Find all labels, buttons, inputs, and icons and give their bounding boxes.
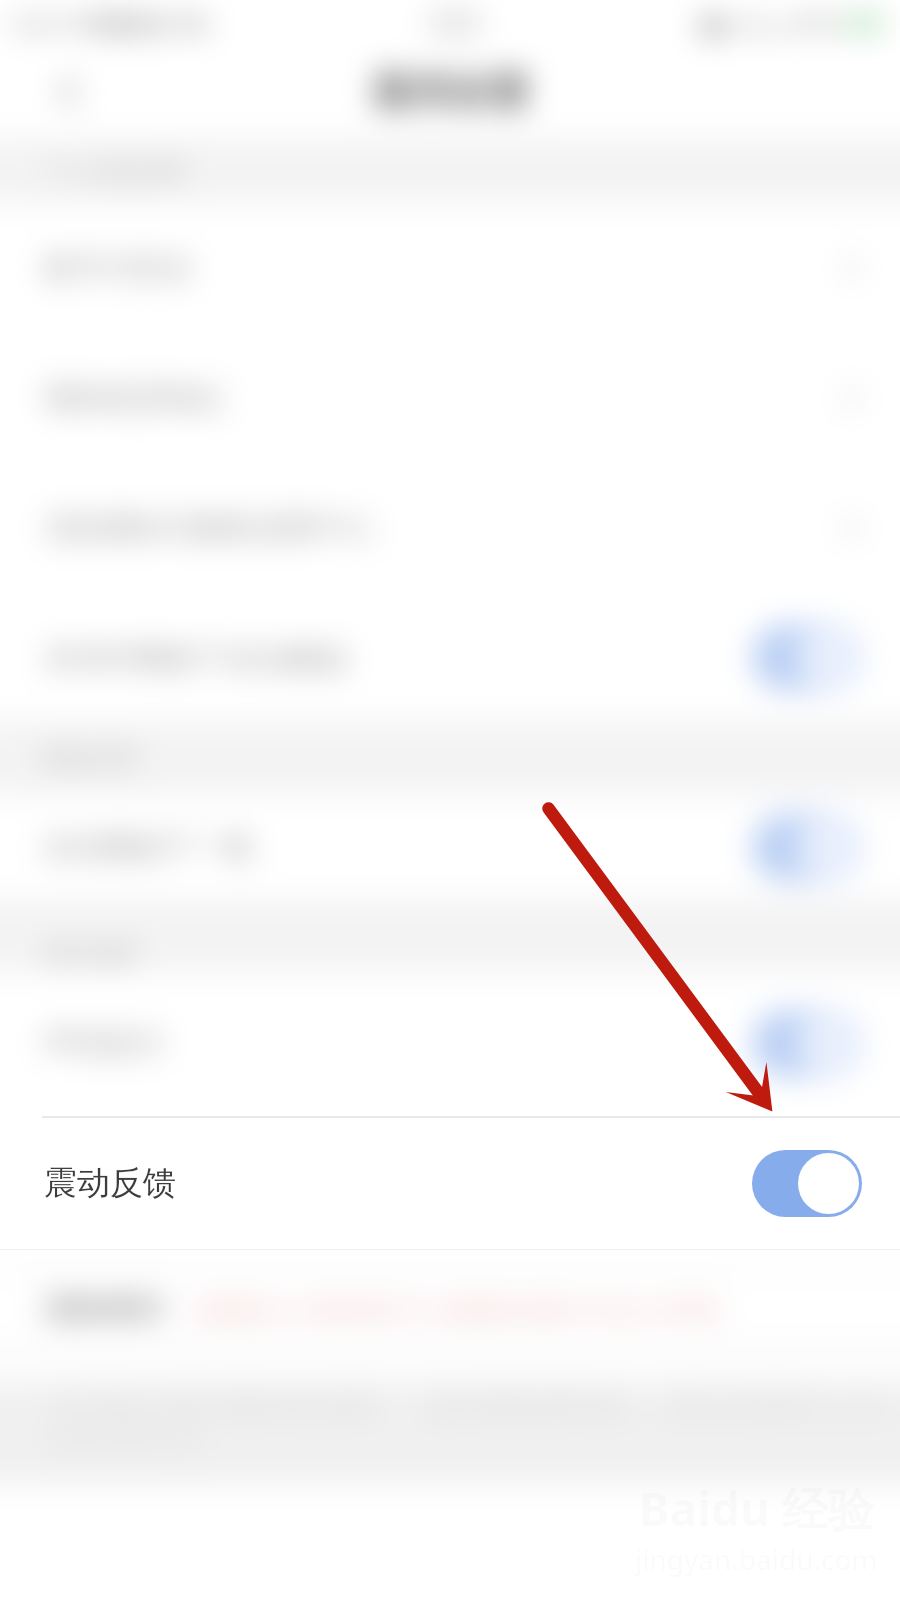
button[interactable]: 自动播放下一集 (752, 814, 862, 881)
button[interactable]: 震动反馈 (0, 1116, 900, 1250)
staticText: 消息通知与隐私设置中心 (44, 509, 374, 547)
staticText: 清除缓存 (42, 1289, 166, 1328)
staticText: 声音提示 (44, 1024, 164, 1062)
staticText: 通用设置 (370, 67, 530, 117)
staticText: ▮▮ ◔ △ 87% (700, 7, 839, 40)
button[interactable]: 非WIFI网络下自动播放 (752, 624, 862, 691)
button[interactable]: 自动播放下一集 (0, 795, 900, 899)
staticText: 震动反馈 (44, 1160, 176, 1202)
button[interactable]: 我的收货地址 (0, 333, 900, 463)
staticText: 非WIFI网络下自动播放 (44, 637, 348, 678)
button[interactable]: 声音提示 (0, 972, 900, 1114)
button[interactable]: 消息通知与隐私设置中心 (0, 463, 900, 593)
button[interactable]: 震动反馈 (0, 1114, 900, 1248)
button[interactable]: 震动反馈 (752, 1148, 862, 1215)
staticText: 自动播放下一集 (44, 828, 254, 866)
button[interactable]: 震动反馈开关 (752, 1150, 862, 1217)
staticText: 中国移动 5G (70, 6, 210, 40)
staticText: 我的收货地址 (44, 379, 224, 417)
staticText: Baidu 经验 (639, 1477, 874, 1540)
button[interactable]: 账号与安全 (0, 203, 900, 333)
button[interactable]: 声音提示 (752, 1010, 862, 1077)
button[interactable]: 非WIFI网络下自动播放 (0, 593, 900, 721)
staticText: 震动反馈 (44, 1162, 176, 1204)
